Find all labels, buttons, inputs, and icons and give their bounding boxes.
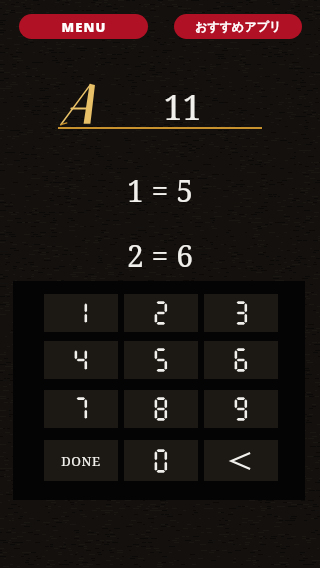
button[interactable]: 2 xyxy=(124,294,198,332)
staticText: DONE xyxy=(61,452,101,470)
button[interactable]: 7 xyxy=(44,390,118,428)
staticText: 1 = 5 xyxy=(127,170,193,211)
staticText: 2 = 6 xyxy=(127,235,193,276)
button[interactable]: 0 xyxy=(124,440,198,481)
button[interactable]: おすすめアプリ xyxy=(174,14,302,39)
button[interactable]: 3 xyxy=(204,294,278,332)
staticText: おすすめアプリ xyxy=(195,19,281,34)
button[interactable]: 5 xyxy=(124,341,198,379)
button[interactable]: 4 xyxy=(44,341,118,379)
staticText: 11 xyxy=(163,84,202,124)
button[interactable]: < xyxy=(204,440,278,481)
button[interactable]: MENU xyxy=(19,14,148,39)
button[interactable]: 1 xyxy=(44,294,118,332)
button[interactable]: DONE xyxy=(44,440,118,481)
button[interactable]: 6 xyxy=(204,341,278,379)
staticText: MENU xyxy=(61,18,107,36)
button[interactable]: 9 xyxy=(204,390,278,428)
button[interactable]: 8 xyxy=(124,390,198,428)
